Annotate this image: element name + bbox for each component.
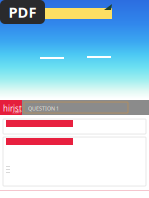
button[interactable] [3,137,146,186]
staticText: PDF [8,2,36,22]
button[interactable]: PDF [0,0,45,24]
button[interactable] [3,119,146,134]
staticText: .com [12,109,21,114]
staticText: QUESTION 1 [28,105,59,112]
staticText: hirist [3,103,22,114]
